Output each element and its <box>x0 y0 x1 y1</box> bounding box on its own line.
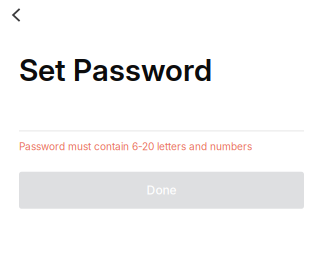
staticText: Set Password <box>19 52 212 88</box>
staticText: Password must contain 6-20 letters and n… <box>19 140 252 153</box>
button[interactable]: Back <box>0 0 44 30</box>
staticText: Done <box>146 183 176 197</box>
